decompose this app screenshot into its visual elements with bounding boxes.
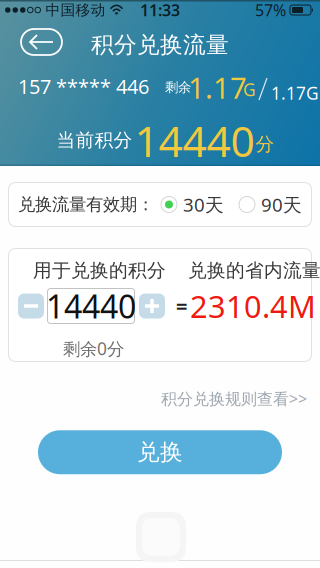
staticText: 当前积分 [56, 129, 132, 152]
staticText: 30天 [183, 192, 224, 217]
staticText: 11:33 [140, 0, 180, 21]
staticText: 兑换流量有效期： [18, 194, 154, 215]
staticText: 剩余0分 [63, 337, 124, 360]
button[interactable]: 30天 [161, 192, 224, 217]
staticText: 分 [255, 133, 274, 156]
staticText: 积分兑换规则查看>> [161, 388, 307, 409]
button[interactable]: Back [21, 29, 62, 55]
staticText: 157 ***** 446 [18, 73, 149, 100]
staticText: 积分兑换流量 [91, 31, 229, 59]
button[interactable]: 积分兑换规则查看>> [161, 388, 307, 409]
staticText: = [176, 293, 187, 319]
staticText: 用于兑换的积分 [33, 259, 166, 282]
staticText: 兑换 [137, 438, 183, 466]
button[interactable]: Increase [139, 293, 165, 318]
staticText: 1.17G [271, 81, 319, 104]
staticText: 2310.4M [190, 286, 316, 326]
button[interactable]: Decrease [18, 293, 44, 318]
staticText: 57% [255, 0, 286, 21]
staticText: 中国移动 [45, 1, 105, 19]
staticText: 14440 [134, 112, 254, 169]
staticText: 1.17 [188, 68, 247, 107]
staticText: 剩余 [165, 79, 191, 95]
staticText: 90天 [261, 192, 302, 217]
staticText: 兑换的省内流量 [188, 259, 320, 282]
button[interactable]: 兑换 [38, 430, 282, 474]
staticText: 14440 [46, 285, 136, 327]
staticText: G [243, 78, 256, 101]
button[interactable]: 90天 [239, 192, 302, 217]
